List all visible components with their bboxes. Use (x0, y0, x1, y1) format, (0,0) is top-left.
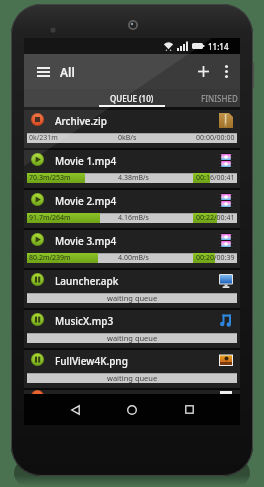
staticText: 70.3m/253m (29, 173, 71, 183)
staticText: FullView4K.png (55, 354, 128, 368)
staticText: Movie 1.mp4 (55, 154, 117, 168)
staticText: 80.2m/239m (29, 253, 71, 263)
staticText: FINISHED (201, 93, 238, 104)
staticText: waiting queue (107, 373, 158, 383)
button[interactable]: Movie 1.mp4 (24, 150, 240, 190)
staticText: 4.16mB/s (118, 213, 149, 223)
button[interactable]: MusicX.mp3 (24, 310, 240, 350)
button[interactable]: Movie 2.mp4 (24, 190, 240, 230)
staticText: 00:22/00:41 (196, 213, 235, 223)
button[interactable]: QUEUE (10) (110, 93, 154, 104)
button[interactable] (192, 54, 214, 89)
staticText: 4.00mB/s (118, 253, 149, 263)
staticText: 00:00/00:00 (196, 133, 235, 143)
staticText: 0kB/s (118, 133, 137, 143)
button[interactable] (30, 61, 56, 83)
staticText: Archive.zip (55, 114, 107, 128)
button[interactable] (218, 54, 234, 89)
staticText: waiting queue (107, 333, 158, 343)
staticText: waiting queue (107, 293, 158, 303)
staticText: MusicX.mp3 (55, 314, 114, 328)
button[interactable]: Movie 3.mp4 (24, 230, 240, 270)
button[interactable]: Launcher.apk (24, 270, 240, 310)
button[interactable] (166, 394, 212, 425)
staticText: All (60, 64, 75, 80)
staticText: 0k/231m (29, 133, 58, 143)
staticText: Movie 2.mp4 (55, 194, 117, 208)
button[interactable] (52, 394, 98, 425)
staticText: 00:16/00:41 (196, 173, 235, 183)
button[interactable]: FINISHED (201, 93, 238, 104)
staticText: Launcher.apk (55, 274, 119, 288)
staticText: 4.38mB/s (118, 173, 149, 183)
button[interactable]: Archive.zip (24, 110, 240, 150)
staticText: 91.7m/264m (29, 213, 71, 223)
button[interactable]: FullView4K.png (24, 350, 240, 390)
staticText: QUEUE (10) (110, 93, 154, 104)
staticText: Movie 3.mp4 (55, 234, 117, 248)
staticText: 11:14 (208, 41, 229, 52)
staticText: 00:20/00:39 (196, 253, 235, 263)
button[interactable] (109, 394, 155, 425)
